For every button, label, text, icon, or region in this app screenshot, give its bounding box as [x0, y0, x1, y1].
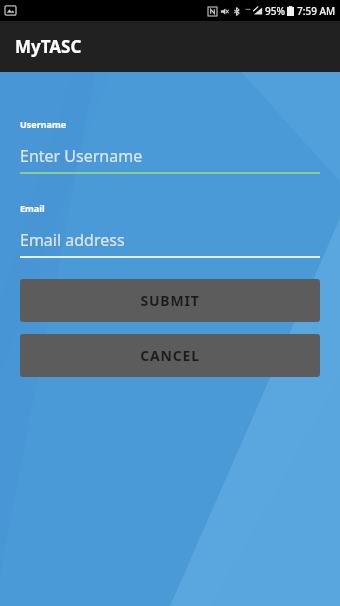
staticText: Username [20, 118, 67, 130]
button[interactable]: Enter Username [20, 145, 320, 174]
button[interactable]: CANCEL [20, 334, 320, 377]
staticText: Email [20, 202, 45, 214]
button[interactable]: SUBMIT [20, 279, 320, 322]
staticText: MyTASC [15, 35, 82, 58]
staticText: Email address [20, 229, 125, 251]
staticText: 95% [265, 4, 285, 18]
staticText: Enter Username [20, 145, 143, 167]
staticText: CANCEL [140, 346, 200, 365]
staticText: SUBMIT [140, 291, 200, 310]
staticText: 7:59 AM [297, 4, 336, 18]
button[interactable]: Email address [20, 229, 320, 258]
